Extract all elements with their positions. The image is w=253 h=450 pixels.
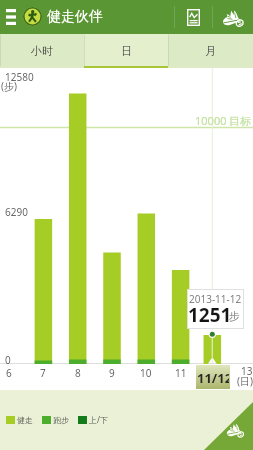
staticText: 6 (6, 366, 12, 380)
staticText: 8 (75, 366, 81, 380)
staticText: 6290 (5, 205, 28, 219)
staticText: 2013-11-12 (189, 292, 242, 306)
staticText: 跑步 (53, 415, 69, 425)
staticText: 9 (109, 366, 115, 380)
staticText: (日) (237, 374, 253, 388)
button[interactable]: 小时 (0, 34, 84, 68)
button[interactable]: 月 (168, 34, 253, 68)
staticText: 11 (175, 366, 187, 380)
staticText: 13 (241, 364, 253, 378)
staticText: 11/12 (197, 369, 229, 387)
button[interactable]: Statistics (175, 0, 212, 34)
staticText: 健走 (17, 415, 33, 425)
staticText: 月 (205, 44, 216, 58)
button[interactable]: 11/12 (196, 365, 230, 389)
button[interactable]: Menu (0, 0, 21, 34)
staticText: 10 (140, 366, 152, 380)
button[interactable]: 日 (84, 34, 168, 68)
button[interactable]: Activity (213, 0, 253, 34)
staticText: 上/下 (89, 414, 108, 425)
staticText: 12580 (5, 70, 34, 84)
staticText: 健走伙伴 (47, 8, 103, 26)
button[interactable]: Start walking (0, 390, 253, 450)
staticText: 步 (229, 309, 240, 323)
staticText: 10000 目标 (195, 113, 252, 128)
staticText: 小时 (31, 44, 53, 58)
staticText: 1251 (188, 302, 232, 328)
staticText: 7 (40, 366, 46, 380)
staticText: 日 (121, 44, 132, 58)
staticText: 0 (5, 353, 11, 367)
staticText: (步) (1, 79, 17, 93)
